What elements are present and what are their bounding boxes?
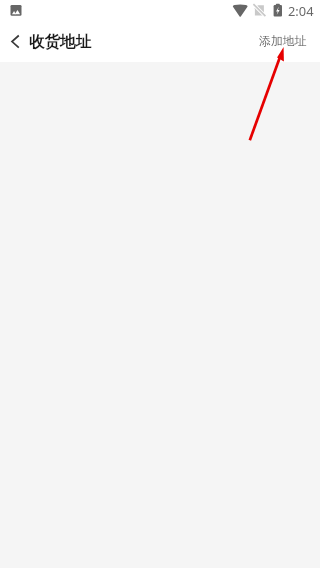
button[interactable]: Back [0,22,32,62]
button[interactable]: 添加地址 [245,25,320,60]
staticText: 2:04 [288,2,314,20]
staticText: 收货地址 [29,32,91,52]
staticText: 添加地址 [259,34,307,49]
